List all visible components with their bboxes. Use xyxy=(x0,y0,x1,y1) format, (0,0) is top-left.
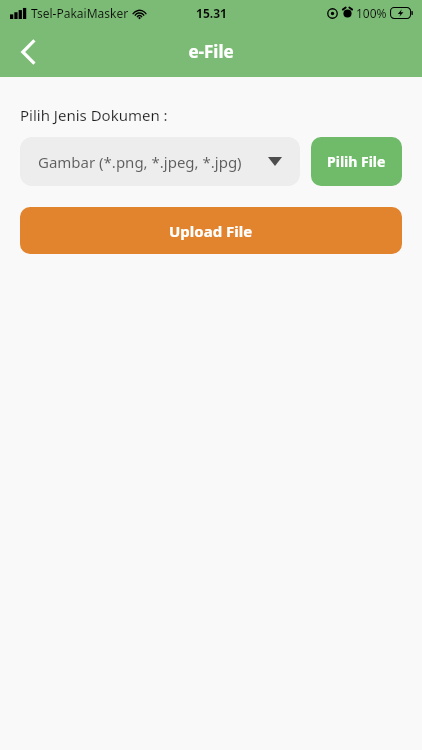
staticText: 100% xyxy=(356,5,387,21)
staticText: e-File xyxy=(188,40,234,63)
staticText: Tsel-PakaiMasker xyxy=(31,5,129,21)
button[interactable]: Upload File xyxy=(20,207,402,254)
staticText: Upload File xyxy=(169,221,253,241)
staticText: Pilih File xyxy=(327,152,386,171)
staticText: 15.31 xyxy=(196,5,227,21)
button[interactable]: Gambar (*.png, *.jpeg, *.jpg) xyxy=(20,137,300,186)
staticText: Gambar (*.png, *.jpeg, *.jpg) xyxy=(38,152,268,172)
button[interactable]: Pilih File xyxy=(311,137,402,186)
button[interactable]: Back xyxy=(8,32,48,72)
staticText: Pilih Jenis Dokumen : xyxy=(20,105,168,125)
